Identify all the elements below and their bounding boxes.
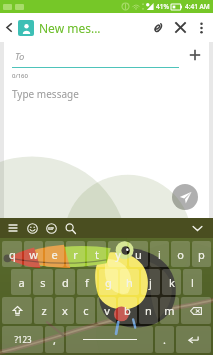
staticText: Type message xyxy=(12,87,79,101)
button[interactable]: , xyxy=(45,326,64,353)
button[interactable]: Search xyxy=(62,220,78,236)
button[interactable]: b xyxy=(118,297,137,324)
button[interactable]: g xyxy=(99,269,118,295)
staticText: z xyxy=(41,303,47,318)
button[interactable]: Emoji xyxy=(24,220,40,236)
staticText: a xyxy=(18,275,25,290)
staticText: x xyxy=(62,303,68,318)
button[interactable]: Send xyxy=(172,184,198,210)
staticText: k xyxy=(169,275,175,290)
button[interactable]: i xyxy=(150,241,169,267)
staticText: p xyxy=(198,247,205,262)
button[interactable]: t xyxy=(87,241,106,267)
staticText: g xyxy=(105,275,112,290)
staticText: o xyxy=(177,247,184,262)
button[interactable]: . xyxy=(155,326,174,353)
button[interactable]: Attach xyxy=(146,13,168,42)
staticText: c xyxy=(83,303,89,318)
staticText: u xyxy=(135,247,142,262)
staticText: 41% xyxy=(156,2,169,11)
button[interactable]: Space xyxy=(66,326,153,353)
staticText: l xyxy=(191,275,194,290)
button[interactable]: e xyxy=(45,241,64,267)
button[interactable]: Hide keyboard xyxy=(185,218,209,238)
staticText: y xyxy=(115,247,121,262)
button[interactable]: v xyxy=(97,297,116,324)
button[interactable]: a xyxy=(11,269,31,295)
button[interactable]: GIF xyxy=(43,220,59,236)
staticText: i xyxy=(158,247,161,262)
button[interactable]: Add recipient xyxy=(181,42,209,68)
staticText: 4:41 AM xyxy=(185,2,210,11)
staticText: m xyxy=(164,303,175,318)
button[interactable]: o xyxy=(171,241,190,267)
button[interactable]: Back xyxy=(0,13,18,42)
button[interactable]: ?123 xyxy=(2,326,43,353)
button[interactable]: j xyxy=(141,269,160,295)
staticText: s xyxy=(40,275,46,290)
staticText: GIF xyxy=(48,226,54,231)
staticText: h xyxy=(126,275,133,290)
button[interactable]: Enter xyxy=(176,326,211,353)
button[interactable]: c xyxy=(76,297,95,324)
button[interactable]: Contact avatar xyxy=(18,20,34,36)
staticText: d xyxy=(62,275,69,290)
button[interactable]: y xyxy=(108,241,127,267)
button[interactable]: More options xyxy=(192,13,210,42)
staticText: r xyxy=(73,247,78,262)
staticText: ?123 xyxy=(14,334,32,345)
button[interactable]: x xyxy=(55,297,74,324)
button[interactable]: d xyxy=(55,269,75,295)
staticText: j xyxy=(149,275,152,290)
button[interactable]: u xyxy=(129,241,148,267)
staticText: n xyxy=(145,303,152,318)
staticText: f xyxy=(85,275,89,290)
button[interactable]: m xyxy=(160,297,179,324)
button[interactable]: z xyxy=(34,297,53,324)
staticText: e xyxy=(51,247,58,262)
button[interactable]: h xyxy=(120,269,139,295)
button[interactable]: Shift xyxy=(2,297,32,324)
button[interactable]: p xyxy=(192,241,211,267)
staticText: b xyxy=(124,303,131,318)
staticText: To xyxy=(15,50,25,63)
staticText: 0/160 xyxy=(12,72,28,80)
staticText: v xyxy=(104,303,110,318)
button[interactable]: q xyxy=(2,241,22,267)
staticText: . xyxy=(163,332,166,347)
button[interactable]: r xyxy=(66,241,85,267)
staticText: t xyxy=(95,247,99,262)
button[interactable]: s xyxy=(33,269,53,295)
staticText: , xyxy=(53,332,56,347)
button[interactable]: w xyxy=(24,241,43,267)
button[interactable]: To xyxy=(4,42,181,68)
button[interactable]: Keyboard menu xyxy=(5,220,21,236)
staticText: New mes... xyxy=(39,20,146,36)
button[interactable]: k xyxy=(162,269,181,295)
button[interactable]: Backspace xyxy=(181,297,211,324)
button[interactable]: l xyxy=(183,269,202,295)
button[interactable]: n xyxy=(139,297,158,324)
staticText: q xyxy=(9,247,16,262)
button[interactable]: Close xyxy=(168,13,192,42)
button[interactable]: f xyxy=(77,269,97,295)
staticText: w xyxy=(29,247,38,262)
